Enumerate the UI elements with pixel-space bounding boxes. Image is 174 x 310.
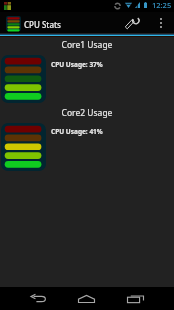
staticText: Core2 Usage	[0, 107, 174, 119]
button[interactable]: Back	[16, 287, 60, 310]
button[interactable]: Recent apps	[113, 287, 157, 310]
button[interactable]: Home	[64, 287, 108, 310]
button[interactable]: More options	[152, 12, 170, 33]
staticText: CPU Usage: 37%	[51, 60, 103, 69]
staticText: Core1 Usage	[0, 39, 174, 51]
staticText: CPU Usage: 41%	[51, 127, 103, 136]
staticText: CPU Stats	[24, 19, 61, 30]
staticText: 12:25	[152, 0, 172, 10]
button[interactable]: Settings	[120, 12, 142, 33]
